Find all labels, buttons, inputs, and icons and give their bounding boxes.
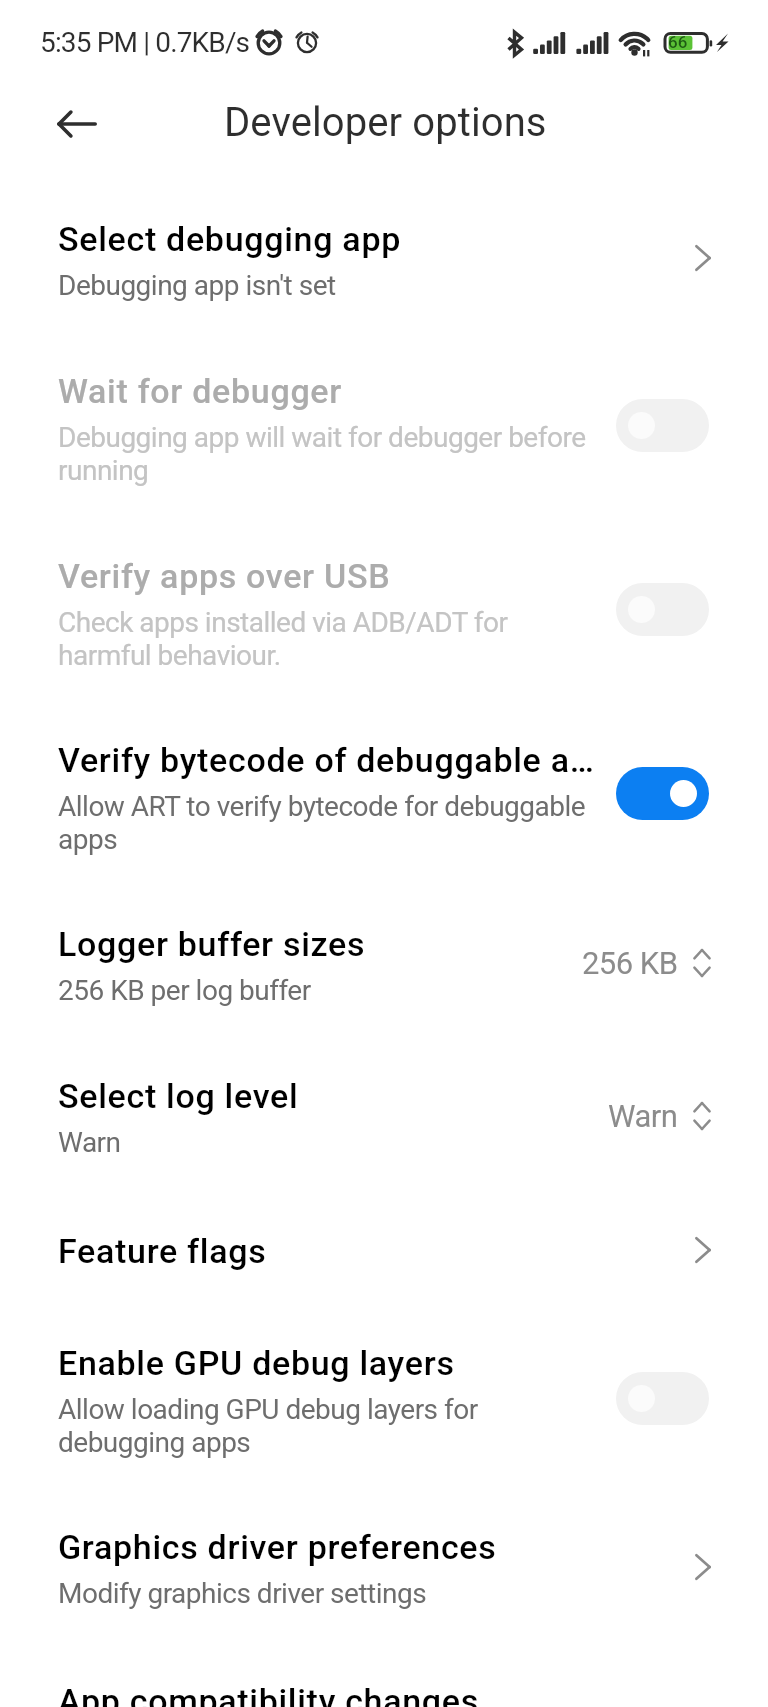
staticText: Allow loading GPU debug layers for debug…: [58, 1393, 595, 1459]
other: Open Graphics driver preferences: [674, 1538, 732, 1596]
staticText: Warn: [608, 1098, 678, 1134]
staticText: Debugging app isn't set: [58, 269, 336, 302]
staticText: App compatibility changes: [58, 1681, 479, 1707]
button[interactable]: Feature flags: [0, 1205, 768, 1285]
button[interactable]: Navigate up: [55, 101, 101, 147]
button[interactable]: Off: [616, 1372, 709, 1425]
staticText: Modify graphics driver settings: [58, 1577, 427, 1610]
button[interactable]: Change value: [682, 940, 722, 986]
button[interactable]: Off: [616, 583, 709, 636]
staticText: Wait for debugger: [58, 371, 342, 411]
staticText: Developer options: [224, 99, 547, 146]
staticText: Debugging app will wait for debugger bef…: [58, 421, 595, 487]
button[interactable]: Off: [616, 399, 709, 452]
button[interactable]: App compatibility changes: [0, 1656, 768, 1707]
button[interactable]: Select log level: [0, 1051, 768, 1170]
staticText: Allow ART to verify bytecode for debugga…: [58, 790, 595, 856]
button[interactable]: Select log level: [500, 1090, 750, 1142]
button[interactable]: Change value: [682, 1093, 722, 1139]
staticText: Warn: [58, 1126, 121, 1159]
staticText: Select debugging app: [58, 219, 401, 259]
button[interactable]: Select debugging app: [0, 193, 768, 312]
button[interactable]: On: [616, 767, 709, 820]
staticText: Verify bytecode of debuggable apps: [58, 740, 595, 780]
staticText: 256 KB: [582, 945, 678, 981]
staticText: Feature flags: [58, 1231, 267, 1271]
button[interactable]: Logger buffer sizes: [500, 937, 750, 989]
button[interactable]: Verify bytecode of debuggable apps: [0, 714, 768, 865]
staticText: Graphics driver preferences: [58, 1527, 497, 1567]
staticText: Logger buffer sizes: [58, 924, 366, 964]
button[interactable]: Verify apps over USB: [0, 530, 768, 681]
other: Open Feature flags: [674, 1221, 732, 1279]
button[interactable]: Wait for debugger: [0, 345, 768, 496]
staticText: 5:35 PM | 0.7KB/s: [40, 26, 250, 59]
staticText: Select log level: [58, 1076, 299, 1116]
staticText: 256 KB per log buffer: [58, 974, 311, 1007]
button[interactable]: Logger buffer sizes: [0, 898, 768, 1017]
other: Open Select debugging app: [674, 229, 732, 287]
staticText: 66: [668, 32, 688, 52]
button[interactable]: Graphics driver preferences: [0, 1501, 768, 1620]
staticText: Verify apps over USB: [58, 556, 391, 596]
button[interactable]: Enable GPU debug layers: [0, 1318, 768, 1469]
staticText: Check apps installed via ADB/ADT for har…: [58, 606, 595, 672]
staticText: Enable GPU debug layers: [58, 1343, 455, 1383]
